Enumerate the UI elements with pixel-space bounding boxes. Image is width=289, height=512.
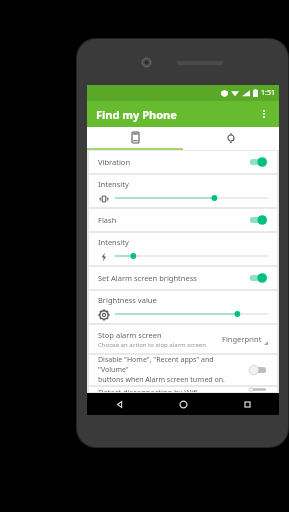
staticText: Intensity bbox=[98, 237, 129, 247]
button[interactable]: Set Alarm screen brightness bbox=[89, 267, 277, 289]
button[interactable]: Flash bbox=[89, 209, 277, 231]
staticText: 1:51 bbox=[261, 88, 275, 98]
staticText: Intensity bbox=[98, 179, 129, 189]
staticText: Fingerprint bbox=[222, 334, 262, 344]
staticText: Disable "Home", "Recent apps" and "Volum… bbox=[98, 355, 244, 375]
staticText: Vibration bbox=[98, 157, 248, 167]
button[interactable]: Intensity bbox=[89, 233, 277, 265]
button[interactable]: Watch tab bbox=[183, 127, 279, 148]
button[interactable]: Brightness value bbox=[89, 291, 277, 323]
button[interactable]: Back bbox=[87, 393, 151, 415]
staticText: Set Alarm screen brightness bbox=[98, 273, 248, 283]
staticText: Brightness value bbox=[98, 295, 157, 305]
staticText: Find my Phone bbox=[96, 107, 177, 122]
button[interactable]: Detect disconnecting by Wifi bbox=[89, 387, 277, 392]
button[interactable]: More options bbox=[253, 103, 275, 125]
button[interactable]: Intensity bbox=[89, 175, 277, 207]
staticText: Flash bbox=[98, 215, 248, 225]
staticText: Choose an action to stop alarm screen bbox=[98, 341, 206, 349]
button[interactable]: Phone tab bbox=[87, 127, 183, 148]
button[interactable]: Home bbox=[151, 393, 215, 415]
staticText: Detect disconnecting by Wifi bbox=[98, 387, 248, 392]
button[interactable]: Vibration bbox=[89, 151, 277, 173]
button[interactable]: Disable "Home", "Recent apps" and "Volum… bbox=[89, 355, 277, 385]
staticText: Stop alarm screen bbox=[98, 330, 162, 340]
staticText: buttons when Alarm screen turned on. bbox=[98, 375, 225, 385]
button[interactable]: Stop alarm screen bbox=[89, 325, 277, 353]
button[interactable]: Recent apps bbox=[215, 393, 279, 415]
